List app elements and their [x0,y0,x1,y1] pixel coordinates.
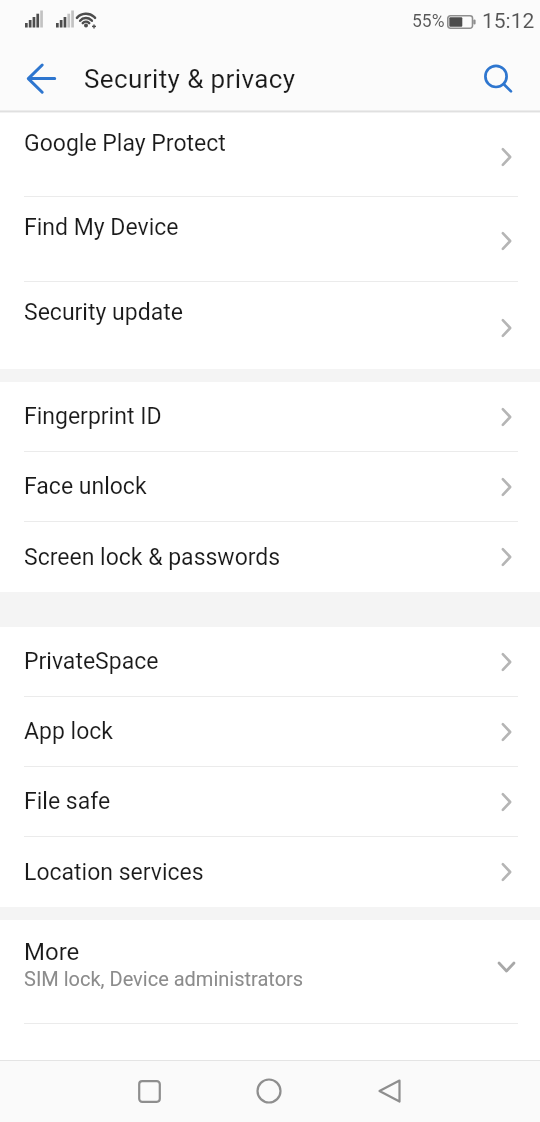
staticText: PrivateSpace [24,648,159,675]
staticText: Fingerprint ID [24,403,162,430]
button[interactable] [329,1060,449,1122]
button[interactable]: Google Play Protect [0,113,540,196]
button[interactable]: App lock [0,697,540,766]
button[interactable]: PrivateSpace [0,627,540,696]
staticText: Security update [24,299,183,326]
staticText: File safe [24,788,111,815]
button[interactable]: Location services [0,837,540,907]
staticText: App lock [24,718,113,745]
button[interactable]: Fingerprint ID [0,382,540,451]
staticText: SIM lock, Device administrators [24,967,304,990]
staticText: Screen lock & passwords [24,544,281,571]
staticText: Find My Device [24,214,179,241]
button[interactable] [474,42,540,110]
button[interactable]: More [0,920,540,1023]
button[interactable] [209,1060,329,1122]
button[interactable]: File safe [0,767,540,836]
button[interactable]: Screen lock & passwords [0,522,540,592]
button[interactable]: Find My Device [0,197,540,281]
staticText: Google Play Protect [24,130,226,157]
button[interactable] [89,1060,209,1122]
staticText: More [24,938,80,966]
button[interactable] [0,42,66,110]
staticText: 55% [412,11,445,32]
staticText: Location services [24,859,204,886]
staticText: Face unlock [24,473,147,500]
button[interactable]: Face unlock [0,452,540,521]
staticText: Security & privacy [84,64,296,94]
staticText: 15:12 [482,9,535,34]
button[interactable]: Security update [0,282,540,369]
